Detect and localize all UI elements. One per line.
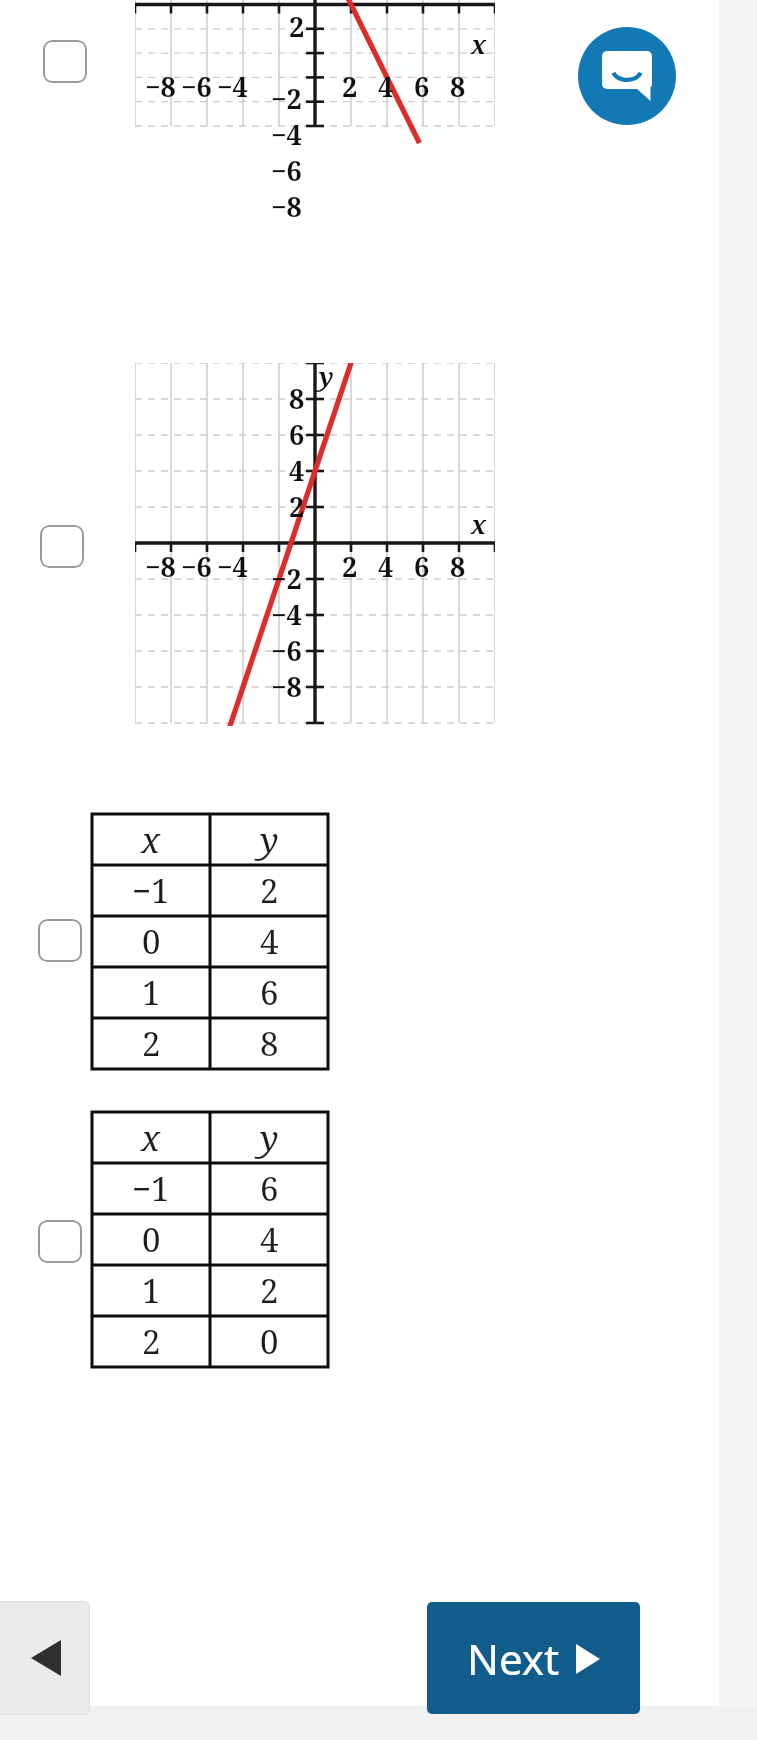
staticText: −6 (181, 548, 212, 585)
staticText: x (141, 1114, 161, 1162)
staticText: y (260, 816, 279, 864)
staticText: 2 (260, 1268, 279, 1313)
staticText: y (260, 1114, 279, 1162)
staticText: −4 (271, 116, 302, 153)
staticText: −1 (132, 1166, 170, 1211)
staticText: y (319, 363, 334, 393)
staticText: 6 (260, 970, 279, 1015)
staticText: 2 (289, 8, 305, 45)
staticText: −6 (181, 68, 212, 105)
staticText: 2 (142, 1021, 161, 1066)
staticText: 6 (260, 1166, 279, 1211)
button[interactable]: Answer choice (43, 40, 87, 83)
staticText: 8 (260, 1021, 279, 1066)
staticText: 4 (289, 452, 305, 489)
staticText: 2 (289, 488, 305, 525)
staticText: Next (467, 1630, 560, 1687)
staticText: 2 (342, 68, 358, 105)
staticText: 8 (289, 380, 305, 417)
staticText: 4 (260, 919, 279, 964)
button[interactable]: x (92, 814, 328, 1069)
staticText: −4 (217, 548, 248, 585)
staticText: 6 (414, 548, 430, 585)
staticText: −8 (271, 668, 302, 705)
staticText: −1 (132, 868, 170, 913)
staticText: 1 (142, 970, 161, 1015)
staticText: −2 (271, 80, 302, 117)
staticText: −8 (271, 188, 302, 225)
staticText: −8 (145, 548, 176, 585)
button[interactable]: Back (0, 1601, 90, 1715)
staticText: −8 (145, 68, 176, 105)
button[interactable]: Open chat (578, 27, 676, 125)
staticText: 2 (142, 1319, 161, 1364)
staticText: 0 (260, 1319, 279, 1364)
staticText: x (141, 816, 161, 864)
staticText: 8 (450, 548, 466, 585)
staticText: −4 (271, 596, 302, 633)
staticText: 4 (378, 68, 394, 105)
staticText: 0 (142, 919, 161, 964)
staticText: −6 (271, 632, 302, 669)
staticText: −6 (271, 152, 302, 189)
staticText: 4 (378, 548, 394, 585)
staticText: 4 (260, 1217, 279, 1262)
button[interactable]: Answer choice (38, 919, 82, 962)
staticText: −4 (217, 68, 248, 105)
button[interactable]: Answer choice (38, 1220, 82, 1263)
button[interactable]: Answer choice (40, 525, 84, 568)
staticText: x (471, 507, 487, 541)
staticText: 1 (142, 1268, 161, 1313)
staticText: 2 (342, 548, 358, 585)
staticText: 6 (414, 68, 430, 105)
staticText: −2 (271, 560, 302, 597)
staticText: x (471, 27, 487, 61)
staticText: 6 (289, 416, 305, 453)
button[interactable]: Next (427, 1602, 640, 1714)
staticText: 8 (450, 68, 466, 105)
staticText: 0 (142, 1217, 161, 1262)
staticText: 2 (260, 868, 279, 913)
button[interactable]: x (92, 1112, 328, 1367)
